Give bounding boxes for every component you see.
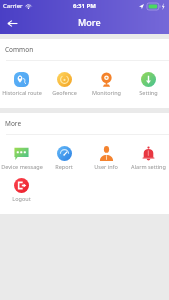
button[interactable]: Geofence: [43, 61, 85, 93]
staticText: Logout: [12, 195, 31, 202]
button[interactable]: User info: [85, 135, 127, 167]
button[interactable]: Setting: [127, 61, 169, 93]
staticText: More: [5, 119, 22, 128]
staticText: Geofence: [52, 89, 77, 96]
staticText: Report: [55, 163, 73, 170]
staticText: More: [78, 16, 101, 28]
button[interactable]: Alarm setting: [127, 135, 169, 167]
staticText: Common: [5, 45, 34, 54]
button[interactable]: Report: [43, 135, 85, 167]
staticText: 6:31 PM: [73, 2, 96, 10]
staticText: Device message: [1, 163, 43, 170]
staticText: Monitoring: [92, 89, 121, 96]
staticText: Setting: [139, 89, 158, 96]
staticText: Carrier: [3, 2, 23, 10]
staticText: Alarm setting: [131, 163, 166, 170]
button[interactable]: Historical route: [0, 61, 43, 93]
button[interactable]: Back: [0, 12, 24, 34]
staticText: User info: [94, 163, 118, 170]
button[interactable]: Device message: [0, 135, 43, 167]
staticText: Historical route: [2, 89, 42, 96]
button[interactable]: Logout: [0, 167, 43, 199]
button[interactable]: Monitoring: [85, 61, 127, 93]
